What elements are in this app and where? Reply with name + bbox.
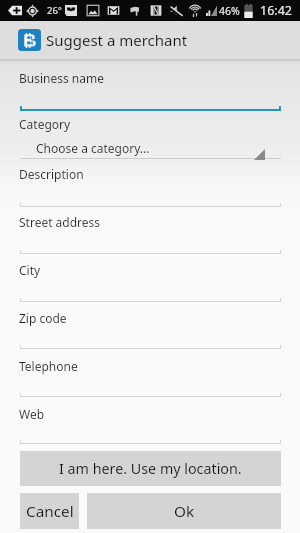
staticText: 46% — [219, 4, 240, 18]
staticText: Suggest a merchant — [46, 30, 188, 50]
button[interactable]: App icon — [18, 29, 41, 51]
staticText: Description — [19, 166, 84, 182]
button[interactable]: Cancel — [20, 493, 79, 529]
other: Choose a category — [254, 149, 265, 160]
button[interactable]: Ok — [87, 493, 281, 529]
staticText: Street address — [19, 214, 101, 230]
button[interactable]: City — [20, 257, 281, 302]
staticText: Ok — [174, 501, 195, 522]
staticText: Cancel — [26, 501, 74, 522]
button[interactable]: Street address — [20, 209, 281, 254]
button[interactable]: Zip code — [20, 305, 281, 349]
staticText: Telephone — [19, 358, 78, 374]
staticText: Zip code — [19, 310, 67, 326]
staticText: Choose a category... — [36, 140, 150, 156]
staticText: Business name — [19, 70, 104, 86]
staticText: 26° — [47, 4, 62, 17]
staticText: Web — [19, 406, 45, 422]
button[interactable]: Web — [20, 401, 281, 444]
staticText: I am here. Use my location. — [59, 459, 242, 478]
button[interactable]: I am here. Use my location. — [20, 451, 281, 486]
staticText: Category — [19, 116, 71, 132]
button[interactable]: Description — [20, 161, 281, 207]
staticText: 16:42 — [260, 2, 292, 19]
staticText: City — [19, 262, 41, 278]
button[interactable]: Category — [20, 115, 281, 161]
button[interactable]: Business name — [20, 65, 281, 111]
button[interactable]: Telephone — [20, 353, 281, 397]
